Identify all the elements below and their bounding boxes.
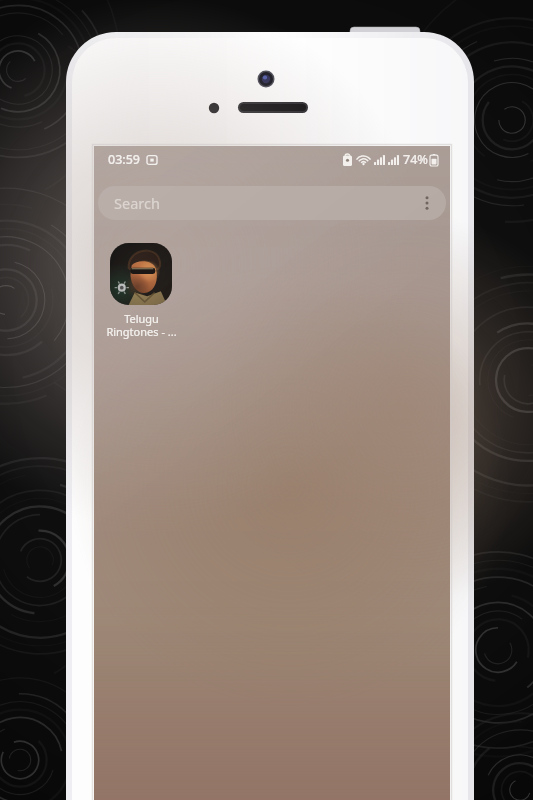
staticText: 74% (403, 151, 428, 168)
button[interactable]: More options (412, 188, 442, 218)
button[interactable]: Telugu Ringtones - ... (98, 241, 184, 341)
staticText: Telugu Ringtones - ... (106, 311, 177, 339)
staticText: Search (114, 193, 160, 213)
button[interactable]: Search (98, 186, 446, 220)
staticText: 03:59 (108, 151, 141, 168)
